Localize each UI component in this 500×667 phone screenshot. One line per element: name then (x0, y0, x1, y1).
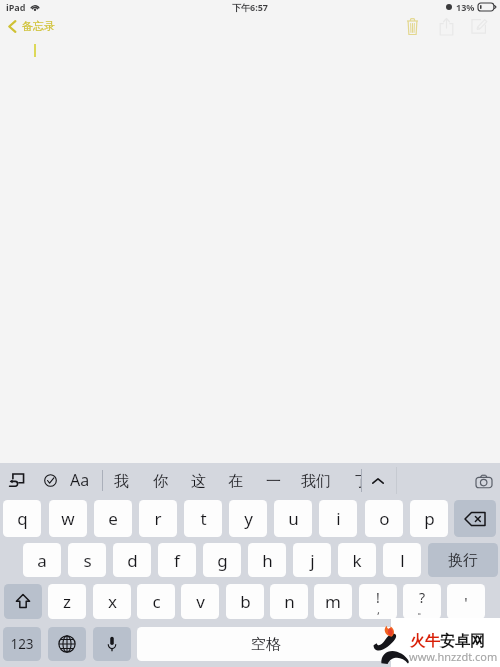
staticText: g (217, 549, 228, 572)
button[interactable]: q (3, 500, 41, 537)
staticText: h (262, 549, 273, 572)
staticText: 下午6:57 (232, 1, 268, 13)
button[interactable]: z (48, 584, 86, 619)
staticText: w (61, 507, 75, 530)
staticText: 了 (354, 472, 361, 491)
staticText: 换行 (448, 551, 478, 570)
button[interactable]: Delete note (398, 13, 426, 39)
button[interactable]: 你 (149, 466, 171, 496)
button[interactable]: Dictation (93, 627, 131, 661)
staticText: 空格 (251, 635, 281, 654)
button[interactable]: h (248, 543, 286, 577)
staticText: i (336, 507, 341, 530)
button[interactable]: s (68, 543, 106, 577)
staticText: z (63, 590, 71, 613)
staticText: l (400, 549, 405, 572)
staticText: b (240, 590, 251, 613)
button[interactable]: c (137, 584, 175, 619)
staticText: n (284, 590, 295, 613)
staticText: x (108, 590, 117, 613)
button[interactable]: g (203, 543, 241, 577)
button[interactable]: 一 (262, 466, 284, 496)
button[interactable]: New note (465, 13, 493, 39)
button[interactable]: 换行 (428, 543, 498, 577)
staticText: c (152, 590, 161, 613)
button[interactable]: b (226, 584, 264, 619)
button[interactable]: ! (359, 584, 397, 619)
button[interactable]: r (139, 500, 177, 537)
staticText: 你 (153, 472, 168, 491)
staticText: d (127, 549, 138, 572)
staticText: 我们 (301, 472, 331, 491)
button[interactable]: Camera (473, 470, 495, 492)
staticText: r (154, 507, 162, 530)
button[interactable]: Shift (4, 584, 42, 619)
button[interactable]: k (338, 543, 376, 577)
staticText: 安卓网 (440, 632, 485, 651)
staticText: 备忘录 (22, 19, 55, 33)
button[interactable]: n (270, 584, 308, 619)
staticText: f (174, 549, 180, 572)
staticText: 一 (266, 472, 281, 491)
button[interactable]: i (319, 500, 357, 537)
button[interactable]: 我 (110, 466, 132, 496)
button[interactable]: t (184, 500, 222, 537)
staticText: Aa (70, 469, 90, 491)
staticText: www.hnzzdt.com (409, 649, 498, 664)
staticText: q (17, 507, 28, 530)
button[interactable]: ' (447, 584, 485, 619)
button[interactable]: a (23, 543, 61, 577)
button[interactable]: j (293, 543, 331, 577)
button[interactable]: 备忘录 (8, 19, 55, 33)
staticText: ! (376, 588, 380, 607)
button[interactable]: Confirm (39, 469, 61, 491)
staticText: ? (419, 588, 426, 607)
staticText: ' (464, 592, 468, 612)
button[interactable]: v (181, 584, 219, 619)
staticText: e (108, 507, 118, 530)
button[interactable]: 在 (224, 466, 246, 496)
button[interactable]: o (365, 500, 403, 537)
staticText: a (37, 549, 47, 572)
staticText: j (310, 549, 315, 572)
staticText: 我 (114, 472, 129, 491)
staticText: 火牛 (410, 632, 440, 651)
staticText: 在 (228, 472, 243, 491)
staticText: u (288, 507, 299, 530)
button[interactable]: f (158, 543, 196, 577)
staticText: 。 (417, 603, 428, 617)
button[interactable]: e (94, 500, 132, 537)
button[interactable]: Backspace (454, 500, 496, 537)
button[interactable]: Expand candidates (366, 469, 390, 492)
staticText: 这 (191, 472, 206, 491)
button[interactable]: m (314, 584, 352, 619)
button[interactable]: 我们 (299, 466, 333, 496)
button[interactable]: x (93, 584, 131, 619)
button[interactable]: d (113, 543, 151, 577)
staticText: t (200, 507, 207, 530)
staticText: y (244, 507, 253, 530)
button[interactable]: Switch keyboard (48, 627, 86, 661)
staticText: 123 (10, 635, 34, 653)
button[interactable]: p (410, 500, 448, 537)
staticText: p (424, 507, 435, 530)
button[interactable]: y (229, 500, 267, 537)
button[interactable]: Aa (68, 469, 92, 491)
staticText: s (83, 549, 92, 572)
button[interactable]: 123 (3, 627, 41, 661)
button[interactable]: 空格 (137, 627, 394, 661)
staticText: , (377, 602, 380, 617)
button[interactable]: Undo (5, 469, 27, 491)
button[interactable]: ? (403, 584, 441, 619)
staticText: o (379, 507, 390, 530)
button[interactable]: 这 (187, 466, 209, 496)
staticText: iPad (6, 1, 26, 13)
button[interactable]: u (274, 500, 312, 537)
button[interactable]: l (383, 543, 421, 577)
staticText: k (352, 549, 362, 572)
staticText: v (196, 590, 205, 613)
staticText: m (325, 590, 341, 613)
button[interactable]: w (49, 500, 87, 537)
staticText: 13% (456, 1, 475, 13)
